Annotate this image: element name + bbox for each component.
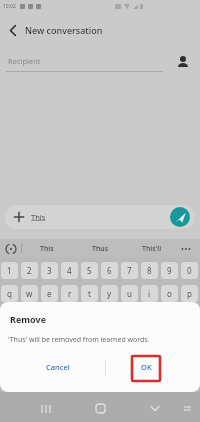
- button[interactable]: r: [61, 285, 78, 302]
- button[interactable]: 7: [121, 262, 138, 279]
- button[interactable]: t: [81, 285, 98, 302]
- button[interactable]: 8: [141, 262, 158, 279]
- button[interactable]: p: [181, 285, 198, 302]
- staticText: e: [47, 288, 52, 299]
- button[interactable]: [175, 54, 191, 70]
- staticText: y: [107, 288, 112, 299]
- staticText: u: [127, 288, 132, 299]
- button[interactable]: Recipient: [0, 45, 200, 77]
- button[interactable]: y: [101, 285, 118, 302]
- staticText: New conversation: [25, 24, 103, 36]
- button[interactable]: This'll: [142, 244, 162, 254]
- button[interactable]: 1: [1, 262, 18, 279]
- button[interactable]: q: [1, 285, 18, 302]
- button[interactable]: o: [161, 285, 178, 302]
- staticText: p: [187, 288, 192, 299]
- button[interactable]: 3: [41, 262, 58, 279]
- button[interactable]: 2: [21, 262, 38, 279]
- staticText: 10:02: [3, 3, 16, 10]
- staticText: Remove: [10, 313, 47, 325]
- staticText: r: [68, 288, 72, 299]
- staticText: i: [148, 288, 151, 299]
- button[interactable]: [4, 242, 18, 256]
- button[interactable]: [170, 207, 190, 227]
- staticText: w: [26, 288, 33, 299]
- button[interactable]: w: [21, 285, 38, 302]
- button[interactable]: i: [141, 285, 158, 302]
- staticText: 0: [187, 265, 192, 276]
- button[interactable]: 5: [81, 262, 98, 279]
- button[interactable]: [181, 244, 191, 254]
- button[interactable]: This: [40, 244, 54, 254]
- staticText: 7: [127, 265, 132, 276]
- staticText: This: [31, 212, 46, 222]
- staticText: Recipient: [8, 56, 41, 66]
- button[interactable]: [4, 19, 24, 39]
- button[interactable]: [143, 397, 167, 421]
- button[interactable]: 9: [161, 262, 178, 279]
- button[interactable]: 6: [101, 262, 118, 279]
- staticText: o: [167, 288, 172, 299]
- button[interactable]: 4: [61, 262, 78, 279]
- button[interactable]: This: [5, 205, 195, 229]
- staticText: 'Thus' will be removed from learned word…: [8, 335, 150, 345]
- staticText: 9: [167, 265, 172, 276]
- button[interactable]: OK: [126, 357, 166, 377]
- staticText: 4: [67, 265, 72, 276]
- staticText: 6: [107, 265, 112, 276]
- button[interactable]: Thus: [92, 244, 109, 254]
- staticText: 1: [7, 265, 12, 276]
- button[interactable]: [88, 397, 112, 421]
- staticText: t: [88, 288, 91, 299]
- staticText: Cancel: [46, 362, 70, 372]
- staticText: 2: [27, 265, 32, 276]
- button[interactable]: u: [121, 285, 138, 302]
- staticText: 3: [47, 265, 52, 276]
- button[interactable]: Cancel: [36, 357, 80, 377]
- button[interactable]: e: [41, 285, 58, 302]
- staticText: OK: [141, 362, 152, 372]
- staticText: q: [7, 288, 12, 299]
- button[interactable]: [32, 397, 56, 421]
- staticText: 8: [147, 265, 152, 276]
- staticText: 5: [87, 265, 92, 276]
- button[interactable]: 0: [181, 262, 198, 279]
